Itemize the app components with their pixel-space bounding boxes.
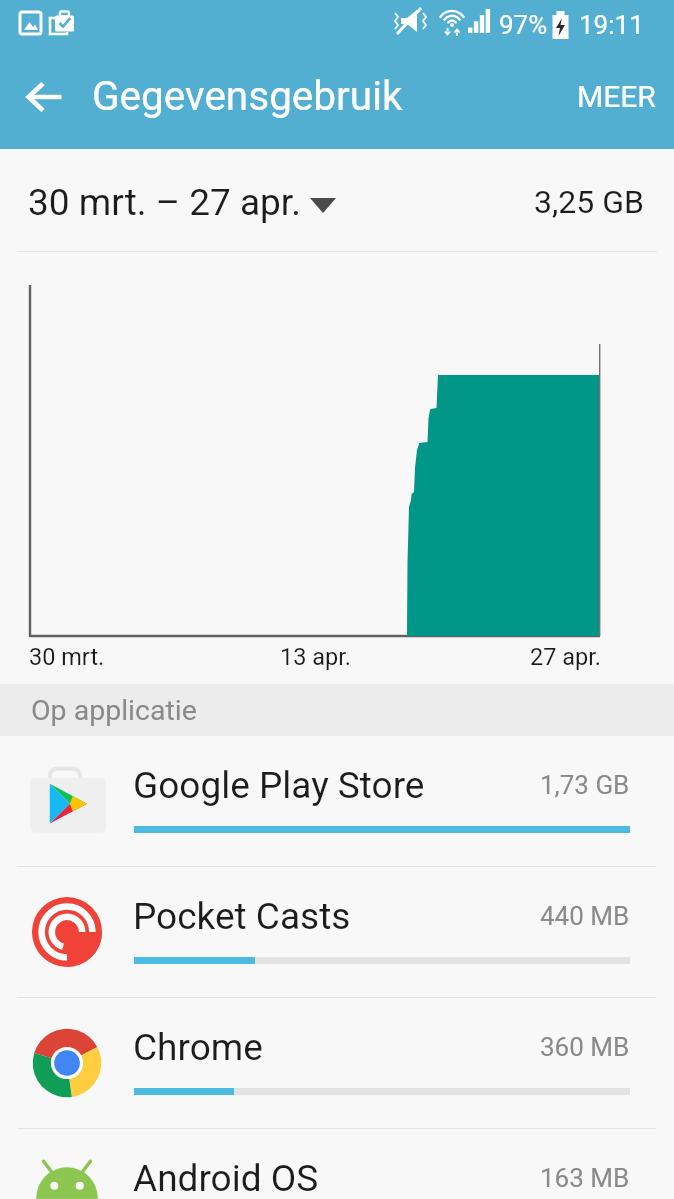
staticText: 97% — [499, 10, 548, 40]
staticText: 163 MB — [540, 1163, 630, 1193]
button[interactable]: Chrome — [0, 998, 674, 1129]
button[interactable]: Google Play Store — [0, 736, 674, 867]
staticText: Android OS — [133, 1157, 319, 1199]
staticText: Pocket Casts — [133, 895, 351, 938]
staticText: 360 MB — [540, 1032, 630, 1062]
staticText: Chrome — [133, 1026, 263, 1069]
button[interactable]: 30 mrt. – 27 apr. — [0, 167, 352, 234]
staticText: MEER — [577, 79, 656, 114]
staticText: Google Play Store — [133, 764, 425, 807]
staticText: Op applicatie — [31, 694, 197, 727]
staticText: 3,25 GB — [534, 183, 644, 221]
staticText: 30 mrt. — [29, 643, 105, 671]
staticText: 27 apr. — [530, 643, 601, 671]
button[interactable]: Back — [14, 67, 74, 127]
staticText: 13 apr. — [280, 643, 351, 671]
button[interactable]: Pocket Casts — [0, 867, 674, 998]
button[interactable]: MEER — [556, 65, 674, 128]
staticText: 30 mrt. – 27 apr. — [28, 181, 301, 224]
button[interactable]: Android OS — [0, 1129, 674, 1199]
staticText: 19:11 — [579, 10, 644, 40]
staticText: 1,73 GB — [540, 770, 630, 800]
staticText: Gegevensgebruik — [92, 72, 403, 119]
staticText: 440 MB — [540, 901, 630, 931]
